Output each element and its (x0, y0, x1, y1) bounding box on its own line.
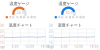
staticText: 6:00 (12, 45, 19, 48)
staticText: 現在 (58, 16, 64, 19)
staticText: 20 (0, 35, 4, 39)
staticText: 30 (0, 24, 4, 27)
staticText: 湿度ゲージ (59, 1, 79, 6)
staticText: 25 (0, 30, 4, 33)
staticText: 12:00 (74, 45, 83, 48)
staticText: 30 (49, 24, 53, 27)
staticText: 最低 (79, 16, 85, 19)
staticText: 15 (49, 41, 53, 44)
staticText: 温度チャート (9, 23, 33, 28)
staticText: 10 (0, 46, 4, 50)
staticText: 18:00 (90, 45, 99, 48)
staticText: 現在 (9, 16, 15, 19)
staticText: 最高 (20, 16, 26, 19)
staticText: 24.3 (17, 11, 24, 15)
staticText: 20 (49, 35, 53, 39)
staticText: 12:00 (25, 45, 34, 48)
staticText: 0:00 (47, 45, 54, 48)
staticText: 最高 (69, 16, 75, 19)
staticText: 湿度チャート (58, 23, 82, 28)
staticText: 6:00 (61, 45, 68, 48)
staticText: 温度ゲージ (10, 1, 30, 6)
staticText: 10 (49, 46, 53, 50)
staticText: 25 (49, 30, 53, 33)
staticText: 0:00 (0, 45, 5, 48)
staticText: 15 (0, 41, 4, 44)
staticText: 18:00 (41, 45, 50, 48)
staticText: 52.0 (66, 11, 73, 15)
staticText: 最低 (30, 16, 36, 19)
